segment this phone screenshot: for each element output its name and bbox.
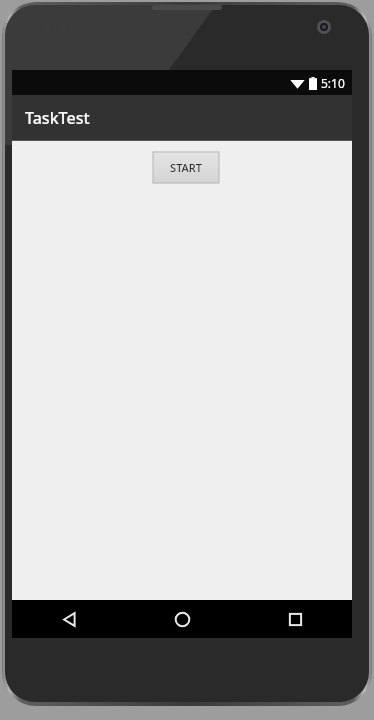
staticText: TaskTest	[25, 107, 90, 129]
button[interactable]: Back	[12, 600, 126, 638]
button[interactable]: Home	[126, 600, 239, 638]
button[interactable]: Recent apps	[239, 600, 352, 638]
staticText: START	[170, 160, 202, 175]
button[interactable]: START	[153, 152, 219, 183]
staticText: 5:10	[321, 75, 345, 91]
